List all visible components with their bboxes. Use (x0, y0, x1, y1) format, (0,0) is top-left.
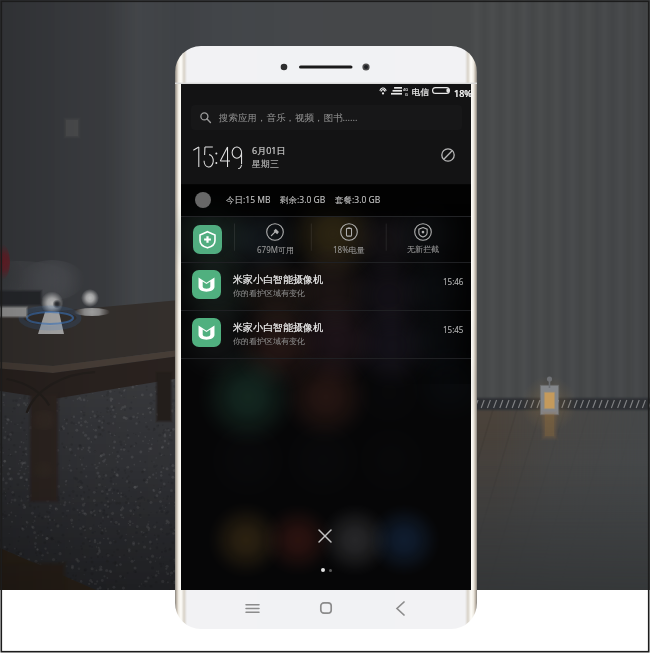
button[interactable]: Back (385, 595, 415, 621)
button[interactable]: Home (311, 595, 341, 621)
staticText: 星期三 (252, 158, 279, 169)
staticText: 剩余:3.0 GB (280, 194, 326, 206)
staticText: 18% (454, 87, 472, 99)
staticText: 电信 (412, 87, 429, 98)
button[interactable]: Do not disturb (435, 142, 460, 167)
button[interactable]: 无新拦截 (392, 223, 454, 254)
button[interactable]: 18%电量 (318, 223, 380, 255)
staticText: 套餐:3.0 GB (335, 194, 381, 206)
staticText: 6月01日 (252, 144, 286, 156)
staticText: 今日:15 MB (226, 194, 271, 206)
staticText: 米家小白智能摄像机 (233, 273, 323, 286)
staticText: 无新拦截 (407, 244, 439, 254)
button[interactable]: 搜索应用，音乐，视频，图书…… (191, 105, 462, 130)
staticText: 米家小白智能摄像机 (233, 321, 323, 334)
staticText: 15:45 (443, 324, 464, 335)
button[interactable]: 今日:15 MB (181, 184, 471, 216)
button[interactable]: 米家小白智能摄像机 (181, 310, 471, 358)
staticText: 679M可用 (257, 244, 294, 255)
button[interactable]: Clear all notifications (311, 522, 339, 550)
staticText: 4G (403, 87, 409, 92)
button[interactable]: Menu (237, 595, 267, 621)
staticText: 搜索应用，音乐，视频，图书…… (219, 111, 358, 124)
staticText: G (405, 92, 408, 97)
staticText: 18%电量 (333, 244, 365, 255)
button[interactable]: 679M可用 (244, 223, 306, 255)
button[interactable]: Security (193, 225, 222, 254)
button[interactable]: Security (181, 216, 471, 263)
button[interactable]: 米家小白智能摄像机 (181, 262, 471, 310)
staticText: 你的看护区域有变化 (233, 288, 305, 298)
staticText: 15:46 (443, 276, 464, 287)
staticText: 你的看护区域有变化 (233, 336, 305, 346)
